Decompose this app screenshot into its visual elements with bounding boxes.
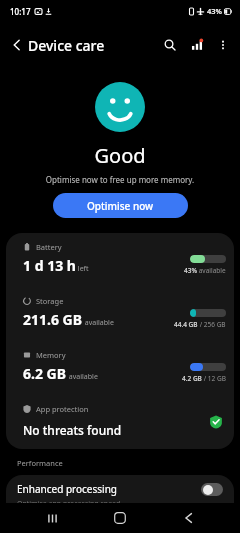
button[interactable]: Recents [18, 503, 86, 533]
staticText: Storage [36, 296, 64, 306]
button[interactable]: Battery [6, 236, 234, 290]
button[interactable]: Optimise now [53, 193, 188, 218]
button[interactable]: Memory [6, 344, 234, 398]
staticText: Good [0, 142, 240, 169]
staticText: available [83, 318, 114, 328]
staticText: 10:17 [10, 6, 31, 17]
staticText: Device care [28, 36, 105, 55]
staticText: 6.2 GB [23, 364, 67, 383]
staticText: / 12 GB [202, 374, 226, 383]
staticText: 43% [184, 266, 197, 275]
staticText: available [67, 372, 98, 382]
staticText: 4.2 GB [182, 374, 202, 383]
staticText: Memory [36, 350, 66, 360]
staticText: App protection [36, 404, 89, 414]
staticText: Performance [17, 458, 63, 468]
button[interactable]: Enhanced processing toggle [201, 483, 223, 496]
button[interactable]: Home [86, 503, 154, 533]
staticText: left [76, 264, 89, 274]
button[interactable]: App protection [6, 398, 234, 449]
button[interactable]: Back [0, 25, 28, 65]
staticText: 211.6 GB [23, 310, 83, 329]
staticText: Battery [36, 242, 62, 252]
staticText: 43% [207, 6, 222, 16]
button[interactable]: More options [210, 32, 236, 58]
staticText: Optimise now to free up more memory. [0, 174, 240, 185]
button[interactable]: Storage [6, 290, 234, 344]
button[interactable]: Back [154, 503, 222, 533]
button[interactable]: Statistics [184, 32, 210, 58]
staticText: available [197, 266, 226, 275]
staticText: Enhanced processing [17, 482, 117, 496]
staticText: Optimise now [87, 199, 154, 213]
staticText: Optimise app processing speed [17, 499, 121, 509]
staticText: 44.4 GB [174, 320, 198, 329]
staticText: / 256 GB [198, 320, 226, 329]
button[interactable]: Search [156, 31, 184, 59]
staticText: 1 d 13 h [23, 256, 76, 275]
button[interactable]: Enhanced processing [6, 475, 234, 533]
staticText: No threats found [23, 422, 122, 438]
